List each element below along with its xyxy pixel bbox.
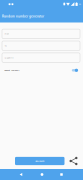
staticText: GENERATE	[35, 160, 44, 162]
button[interactable]: Back	[14, 169, 28, 180]
staticText: From	[4, 32, 9, 35]
staticText: Random number generator	[2, 15, 44, 18]
button[interactable]: Home	[35, 169, 49, 180]
staticText: Repeat numbers	[4, 69, 19, 72]
button[interactable]: GENERATE	[15, 157, 64, 165]
staticText: Quantity	[4, 56, 13, 59]
staticText: 93	[79, 3, 81, 5]
button[interactable]: Share	[68, 155, 79, 166]
button[interactable]: Recent apps	[54, 169, 68, 180]
staticText: To	[4, 44, 6, 47]
